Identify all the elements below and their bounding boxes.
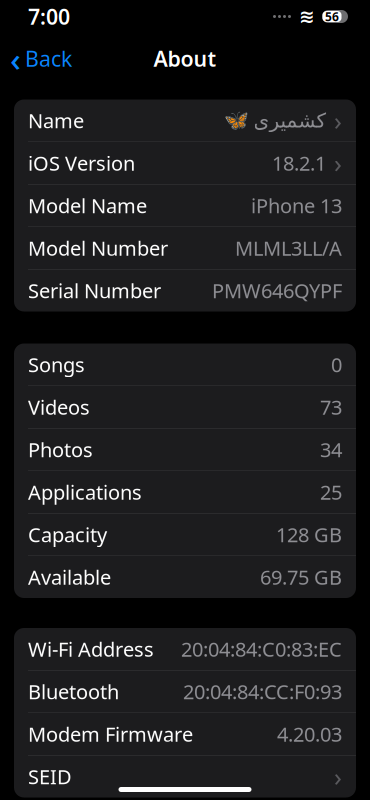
button[interactable]: Capacity: [14, 513, 356, 555]
staticText: PMW646QYPF: [212, 277, 342, 304]
staticText: Photos: [28, 436, 93, 463]
staticText: Videos: [28, 394, 90, 420]
button[interactable]: Bluetooth: [14, 670, 356, 712]
button[interactable]: Name: [14, 99, 356, 141]
staticText: Wi-Fi Address: [28, 636, 154, 662]
button[interactable]: Model Name: [14, 184, 356, 226]
button[interactable]: Wi-Fi Address: [14, 628, 356, 670]
button[interactable]: Songs: [14, 343, 356, 385]
staticText: ›: [334, 760, 342, 793]
staticText: iPhone 13: [251, 192, 342, 219]
button[interactable]: Serial Number: [14, 269, 356, 311]
button[interactable]: Model Number: [14, 227, 356, 269]
button[interactable]: Modem Firmware: [14, 713, 356, 755]
staticText: ‹: [10, 36, 21, 81]
staticText: 0: [331, 351, 342, 378]
button[interactable]: Applications: [14, 471, 356, 513]
staticText: 20:04:84:C0:83:EC: [181, 636, 342, 662]
staticText: Capacity: [28, 521, 107, 548]
staticText: Serial Number: [28, 277, 161, 304]
staticText: MLML3LL/A: [235, 235, 342, 261]
staticText: Model Name: [28, 192, 147, 219]
button[interactable]: SEID: [14, 755, 356, 797]
staticText: 25: [320, 479, 342, 505]
staticText: 128 GB: [276, 521, 342, 548]
staticText: Model Number: [28, 235, 168, 261]
staticText: كشميرى: [253, 109, 326, 132]
staticText: 7:00: [28, 2, 70, 31]
staticText: ›: [334, 146, 342, 180]
staticText: SEID: [28, 763, 72, 790]
staticText: ≋: [299, 6, 315, 27]
staticText: iOS Version: [28, 150, 135, 176]
button[interactable]: Videos: [14, 386, 356, 428]
staticText: 56: [325, 8, 339, 24]
staticText: Back: [25, 44, 72, 73]
staticText: 🦋: [224, 109, 249, 132]
staticText: Available: [28, 564, 111, 590]
staticText: 18.2.1: [272, 150, 326, 176]
button[interactable]: ‹: [0, 38, 82, 78]
staticText: 20:04:84:CC:F0:93: [183, 678, 342, 705]
staticText: Songs: [28, 351, 85, 378]
button[interactable]: Available: [14, 556, 356, 598]
staticText: Modem Firmware: [28, 721, 193, 747]
staticText: ›: [334, 104, 342, 137]
staticText: Name: [28, 107, 84, 134]
staticText: 73: [320, 394, 342, 420]
button[interactable]: iOS Version: [14, 142, 356, 184]
staticText: 34: [320, 436, 342, 463]
button[interactable]: Photos: [14, 428, 356, 470]
staticText: 4.20.03: [277, 721, 342, 747]
staticText: About: [153, 44, 216, 73]
staticText: Bluetooth: [28, 678, 119, 705]
staticText: Applications: [28, 479, 142, 505]
staticText: 69.75 GB: [260, 564, 342, 590]
